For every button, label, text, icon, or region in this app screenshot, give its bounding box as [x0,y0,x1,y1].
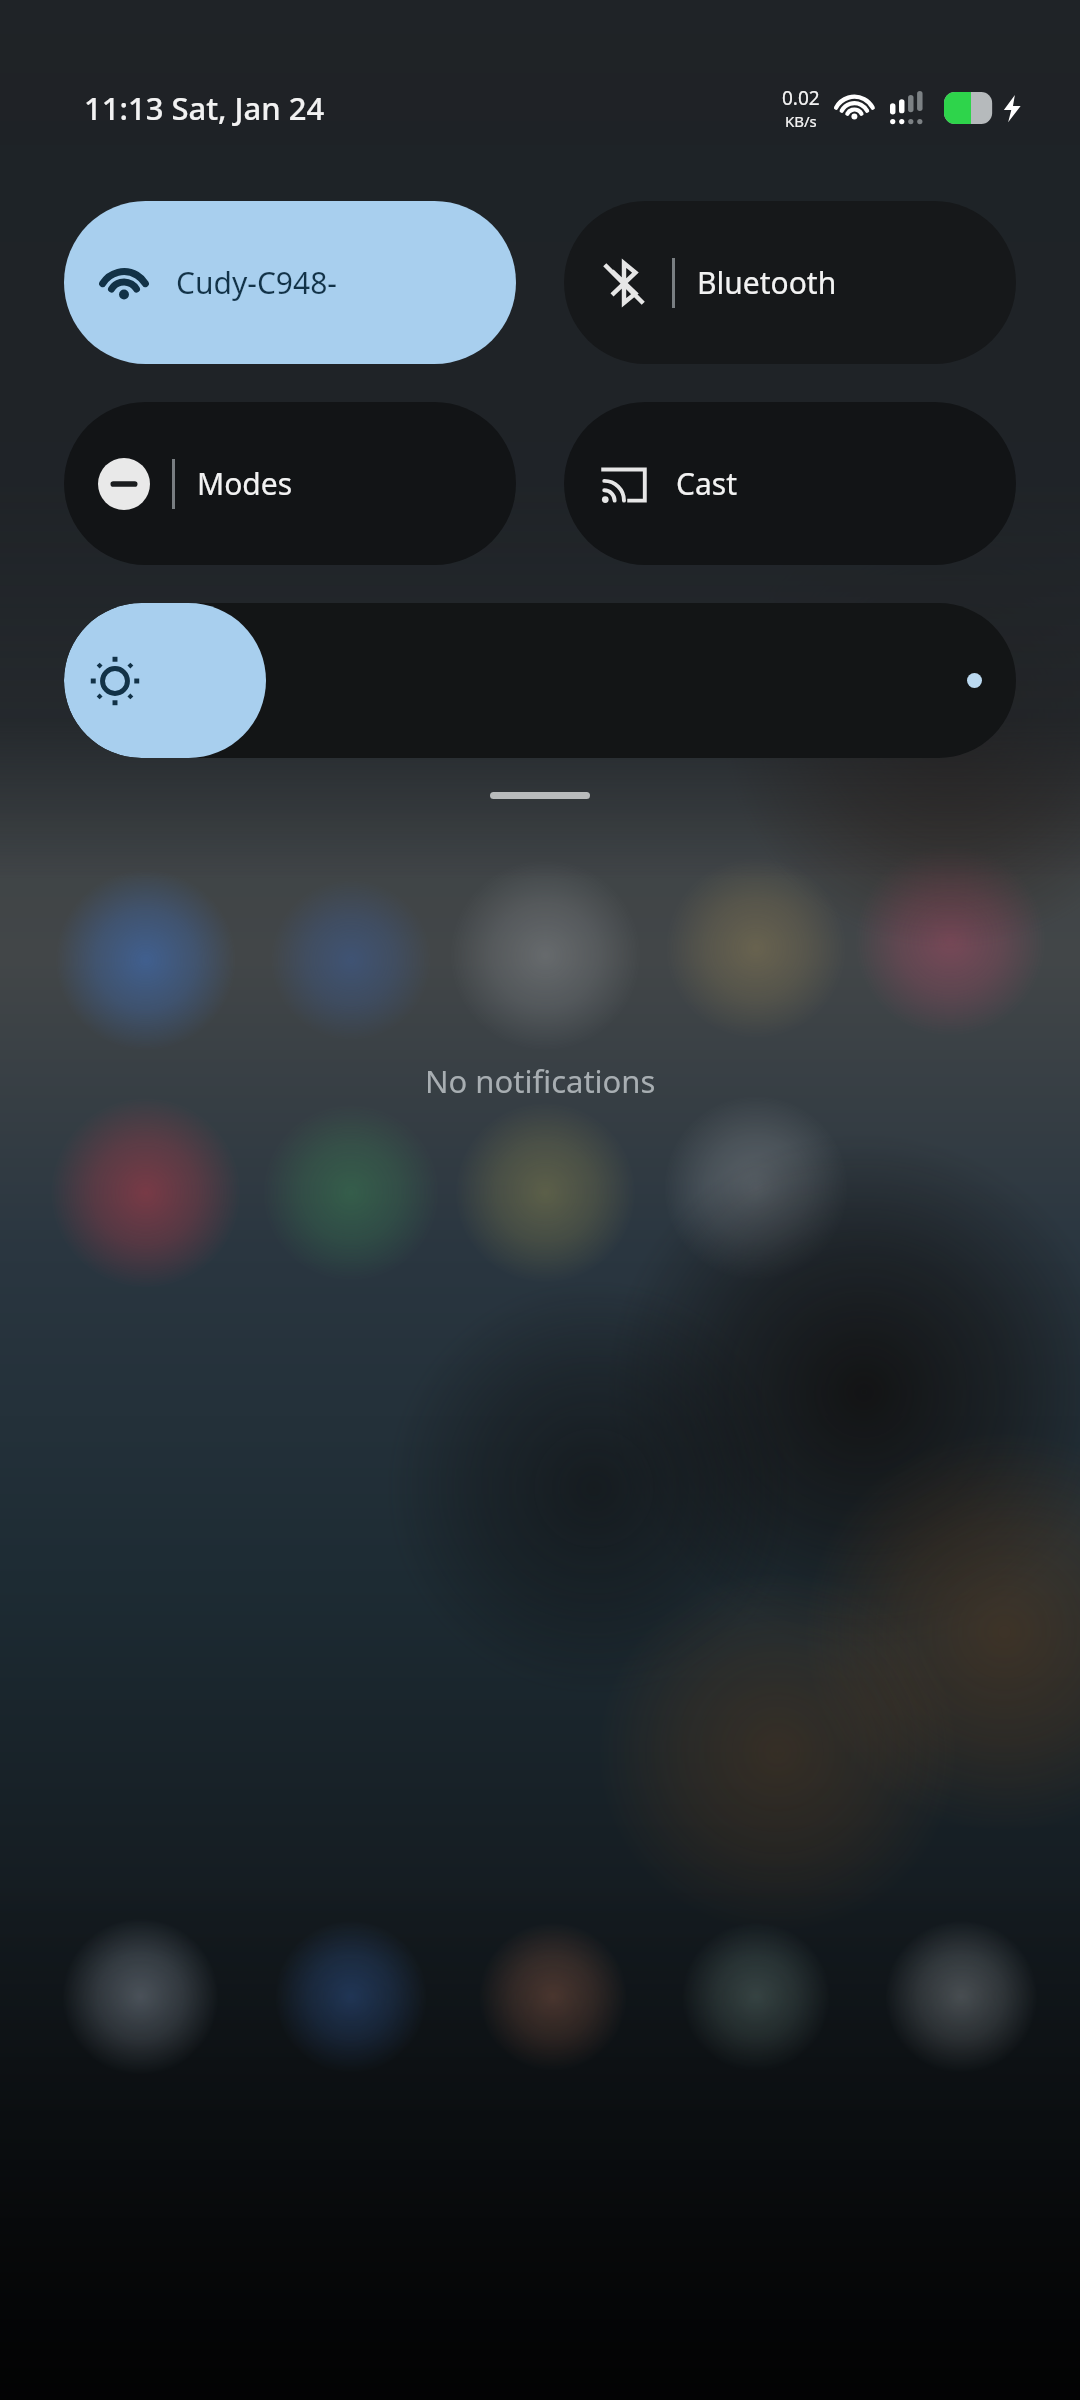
button[interactable] [490,792,590,799]
staticText: Bluetooth [697,262,837,303]
staticText: Cast [676,463,737,504]
button[interactable]: Brightness [64,603,1016,758]
staticText: Cudy-C948- [176,262,338,303]
staticText: No notifications [425,1060,656,1102]
staticText: Modes [197,463,293,504]
staticText: 11:13 Sat, Jan 24 [84,87,325,129]
button[interactable]: Cudy-C948- [64,201,516,364]
button[interactable]: Bluetooth [564,201,1016,364]
button[interactable]: Modes [64,402,516,565]
button[interactable]: Cast [564,402,1016,565]
staticText: 0.02 [782,85,820,111]
staticText: KB/s [785,111,817,131]
